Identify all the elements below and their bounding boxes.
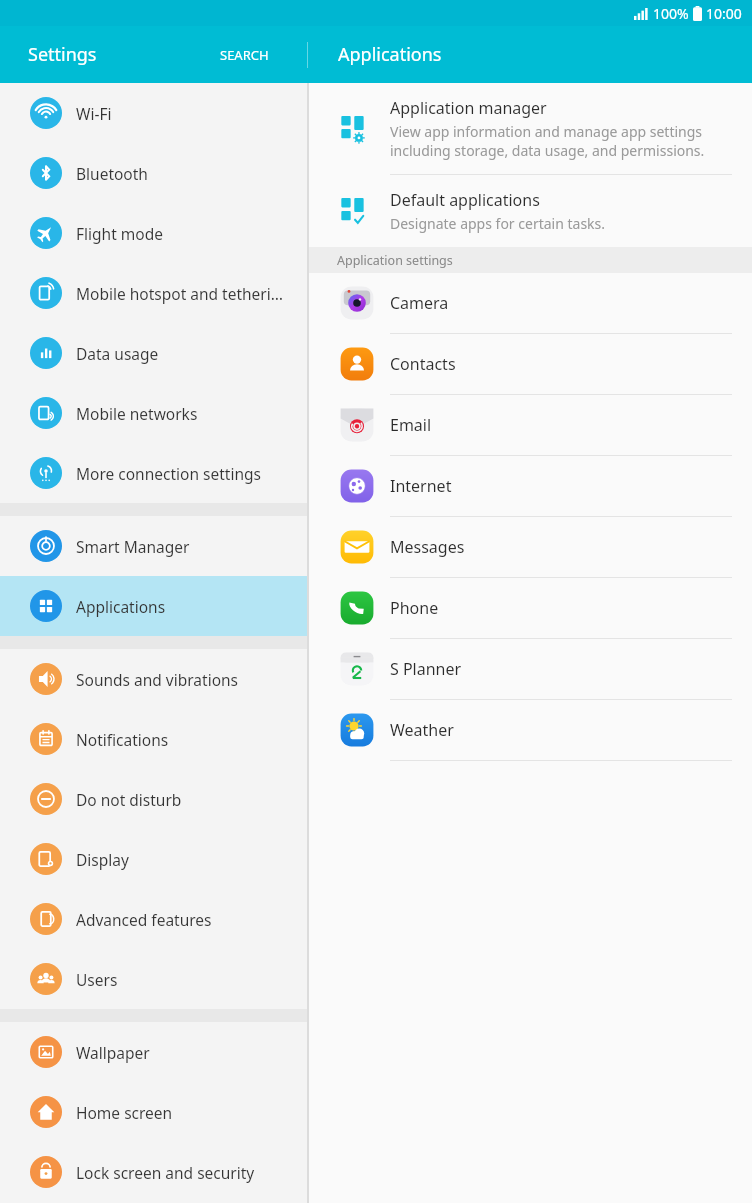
staticText: Notifications [76,729,169,750]
button[interactable]: Wallpaper [0,1022,307,1082]
staticText: Settings [28,42,97,67]
staticText: Lock screen and security [76,1162,255,1183]
staticText: Home screen [76,1102,173,1123]
button[interactable]: Email [309,395,752,456]
button[interactable]: Sounds and vibrations [0,649,307,709]
button[interactable]: More connection settings [0,443,307,503]
staticText: Mobile networks [76,403,198,424]
staticText: Default applications [390,189,540,211]
button[interactable]: Lock screen and security [0,1142,307,1202]
staticText: Application settings [337,252,453,269]
staticText: Sounds and vibrations [76,669,239,690]
staticText: Display [76,849,129,870]
button[interactable]: Applications [0,576,307,636]
button[interactable]: Internet [309,456,752,517]
staticText: More connection settings [76,463,261,484]
button[interactable]: Mobile networks [0,383,307,443]
staticText: Weather [390,719,454,741]
staticText: Contacts [390,353,456,375]
button[interactable]: Camera [309,273,752,334]
button[interactable]: Wi-Fi [0,83,307,143]
button[interactable]: Data usage [0,323,307,383]
button[interactable]: Messages [309,517,752,578]
button[interactable]: Mobile hotspot and tetheri… [0,263,307,323]
staticText: Email [390,414,432,436]
staticText: 100% [653,4,689,23]
button[interactable]: Home screen [0,1082,307,1142]
staticText: Users [76,969,118,990]
button[interactable]: Advanced features [0,889,307,949]
button[interactable]: Notifications [0,709,307,769]
staticText: Designate apps for certain tasks. [390,214,606,233]
staticText: Advanced features [76,909,212,930]
button[interactable]: Do not disturb [0,769,307,829]
staticText: Phone [390,597,439,619]
staticText: Wallpaper [76,1042,150,1063]
staticText: S Planner [390,658,462,680]
button[interactable]: Bluetooth [0,143,307,203]
staticText: Data usage [76,343,159,364]
button[interactable]: SEARCH [208,38,281,72]
button[interactable]: S Planner [309,639,752,700]
button[interactable]: Flight mode [0,203,307,263]
button[interactable]: Display [0,829,307,889]
staticText: Bluetooth [76,163,148,184]
staticText: Smart Manager [76,536,190,557]
staticText: Messages [390,536,465,558]
staticText: 10:00 [706,4,742,23]
button[interactable]: Smart Manager [0,516,307,576]
staticText: Internet [390,475,452,497]
button[interactable]: Application manager [309,83,752,174]
staticText: Applications [338,42,442,67]
staticText: Application manager [390,97,547,119]
staticText: Applications [76,596,166,617]
button[interactable]: Default applications [309,175,752,247]
button[interactable]: Users [0,949,307,1009]
staticText: Do not disturb [76,789,182,810]
button[interactable]: Contacts [309,334,752,395]
staticText: View app information and manage app sett… [390,122,705,160]
button[interactable]: Weather [309,700,752,761]
staticText: Flight mode [76,223,163,244]
staticText: Wi-Fi [76,103,112,124]
staticText: Mobile hotspot and tetheri… [76,283,284,304]
staticText: Camera [390,292,449,314]
staticText: SEARCH [220,46,269,64]
button[interactable]: Phone [309,578,752,639]
